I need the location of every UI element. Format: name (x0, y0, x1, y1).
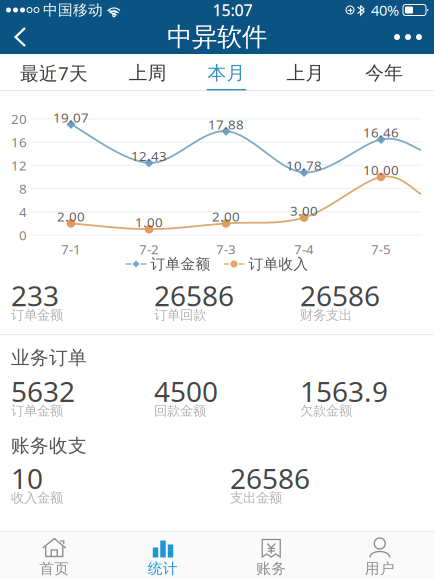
staticText: 业务订单 (11, 346, 87, 369)
staticText: 7-2 (139, 240, 159, 258)
staticText: 1563.9 (300, 373, 388, 410)
staticText: 订单金额 (11, 307, 63, 323)
button[interactable]: 最近7天 (19, 54, 89, 91)
button[interactable]: 统计 (108, 532, 217, 579)
staticText: 26586 (300, 277, 380, 314)
staticText: 中国移动 (39, 1, 107, 19)
staticText: 26586 (230, 460, 310, 497)
staticText: 回款金额 (154, 402, 206, 419)
staticText: 欠款金额 (300, 402, 352, 419)
staticText: 今年 (365, 61, 403, 84)
staticText: 财务支出 (300, 307, 352, 323)
staticText: 本月 (208, 61, 246, 84)
staticText: 2.00 (57, 207, 85, 225)
staticText: 订单金额 (150, 255, 210, 273)
button[interactable]: 上月 (285, 54, 325, 91)
button[interactable]: More (382, 20, 434, 54)
staticText: 12 (11, 156, 27, 174)
staticText: 8 (19, 180, 27, 197)
staticText: 20 (11, 110, 27, 128)
staticText: 40% (367, 0, 403, 20)
staticText: 首页 (39, 559, 69, 577)
staticText: 15:07 (212, 0, 252, 21)
staticText: 16 (11, 133, 27, 151)
staticText: 支出金额 (230, 489, 282, 506)
staticText: 0 (19, 226, 27, 244)
staticText: 2.00 (212, 207, 240, 225)
staticText: 订单收入 (248, 255, 308, 273)
staticText: 最近7天 (20, 61, 88, 85)
staticText: 账务收支 (11, 434, 87, 457)
staticText: 10 (11, 460, 43, 497)
staticText: 账务 (256, 559, 286, 577)
staticText: 订单回款 (154, 307, 206, 323)
staticText: 上月 (286, 61, 324, 84)
button[interactable]: 今年 (364, 54, 404, 91)
button[interactable]: 首页 (0, 532, 108, 579)
button[interactable]: 本月 (207, 54, 247, 91)
staticText: 7-1 (61, 240, 81, 258)
staticText: 上周 (129, 61, 167, 84)
staticText: 10.00 (363, 161, 399, 179)
button[interactable]: 账务 (217, 532, 325, 579)
staticText: 中异软件 (167, 21, 267, 52)
staticText: 233 (11, 277, 59, 314)
staticText: 4500 (154, 373, 218, 410)
staticText: 5632 (11, 373, 75, 410)
button[interactable]: 用户 (325, 532, 434, 579)
staticText: 10.78 (286, 157, 322, 174)
staticText: 统计 (148, 559, 178, 577)
staticText: 26586 (154, 277, 234, 314)
staticText: 12.43 (131, 147, 167, 165)
staticText: 3.00 (290, 202, 318, 219)
staticText: 17.88 (208, 115, 244, 133)
staticText: 7-5 (371, 240, 391, 258)
staticText: 4 (19, 203, 27, 221)
staticText: 7-4 (294, 240, 314, 258)
button[interactable]: Back (0, 20, 44, 54)
staticText: 收入金额 (11, 489, 63, 506)
button[interactable]: 上周 (128, 54, 168, 91)
staticText: 19.07 (53, 108, 89, 126)
staticText: 用户 (365, 559, 395, 577)
staticText: 1.00 (135, 213, 163, 231)
staticText: 订单金额 (11, 402, 63, 419)
staticText: 16.46 (363, 124, 399, 141)
staticText: 7-3 (216, 240, 236, 258)
